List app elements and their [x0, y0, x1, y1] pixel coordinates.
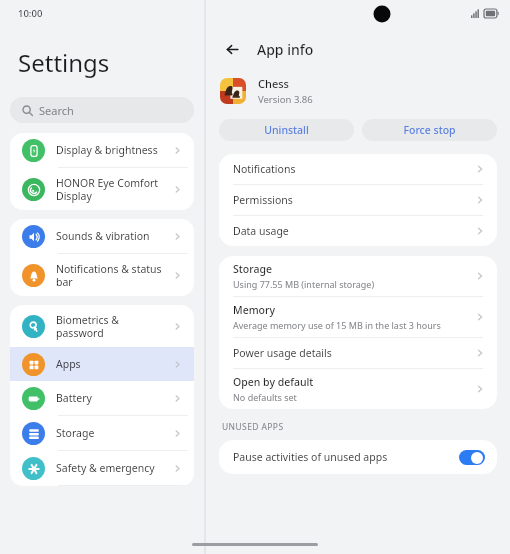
staticText: Storage	[233, 262, 272, 276]
staticText: No defaults set	[233, 391, 297, 403]
staticText: Permissions	[233, 193, 293, 207]
button[interactable]: Storage	[219, 256, 497, 296]
staticText: Battery	[56, 391, 173, 405]
button[interactable]: Pause activities of unused apps	[219, 440, 497, 474]
staticText: 10:00	[18, 7, 43, 20]
staticText: Pause activities of unused apps	[233, 450, 459, 464]
staticText: Uninstall	[264, 123, 309, 137]
button[interactable]: Uninstall	[219, 119, 354, 141]
staticText: Search	[39, 103, 74, 118]
button[interactable]: HONOR Eye Comfort Display	[10, 168, 194, 210]
button[interactable]: Battery	[10, 381, 194, 415]
button[interactable]: Display & brightness	[10, 133, 194, 167]
button[interactable]: Sounds & vibration	[10, 219, 194, 253]
button[interactable]: Storage	[10, 416, 194, 450]
staticText: HONOR Eye Comfort Display	[56, 176, 173, 203]
button[interactable]: Data usage	[219, 216, 497, 246]
staticText: UNUSED APPS	[222, 421, 284, 433]
button[interactable]: Notifications & status bar	[10, 254, 194, 296]
staticText: Power usage details	[233, 346, 332, 360]
staticText: Safety & emergency	[56, 461, 173, 475]
button[interactable]: Memory	[219, 297, 497, 337]
button[interactable]: Force stop	[362, 119, 497, 141]
button[interactable]: Notifications	[219, 154, 497, 184]
staticText: Data usage	[233, 224, 289, 238]
staticText: Settings	[18, 46, 110, 79]
staticText: Chess	[258, 76, 289, 91]
button[interactable]: Power usage details	[219, 338, 497, 368]
staticText: Storage	[56, 426, 173, 440]
staticText: Notifications	[233, 162, 296, 176]
button[interactable]: Apps	[10, 347, 194, 381]
staticText: Sounds & vibration	[56, 229, 173, 243]
staticText: Force stop	[403, 123, 456, 137]
staticText: Open by default	[233, 375, 314, 389]
staticText: Apps	[56, 357, 173, 371]
button[interactable]: Safety & emergency	[10, 451, 194, 485]
staticText: App info	[257, 40, 314, 59]
staticText: Average memory use of 15 MB in the last …	[233, 319, 441, 331]
staticText: Version 3.86	[258, 93, 313, 106]
button[interactable]: Open by default	[219, 369, 497, 409]
button[interactable]: Pause activities of unused apps toggle	[459, 450, 485, 465]
staticText: Biometrics & password	[56, 313, 173, 340]
staticText: Memory	[233, 303, 276, 317]
staticText: Display & brightness	[56, 143, 173, 157]
button[interactable]: Search	[10, 97, 194, 123]
staticText: Using 77.55 MB (internal storage)	[233, 278, 375, 290]
button[interactable]: Biometrics & password	[10, 305, 194, 347]
staticText: Notifications & status bar	[56, 262, 173, 289]
button[interactable]: Permissions	[219, 185, 497, 215]
button[interactable]: Back	[220, 37, 244, 61]
